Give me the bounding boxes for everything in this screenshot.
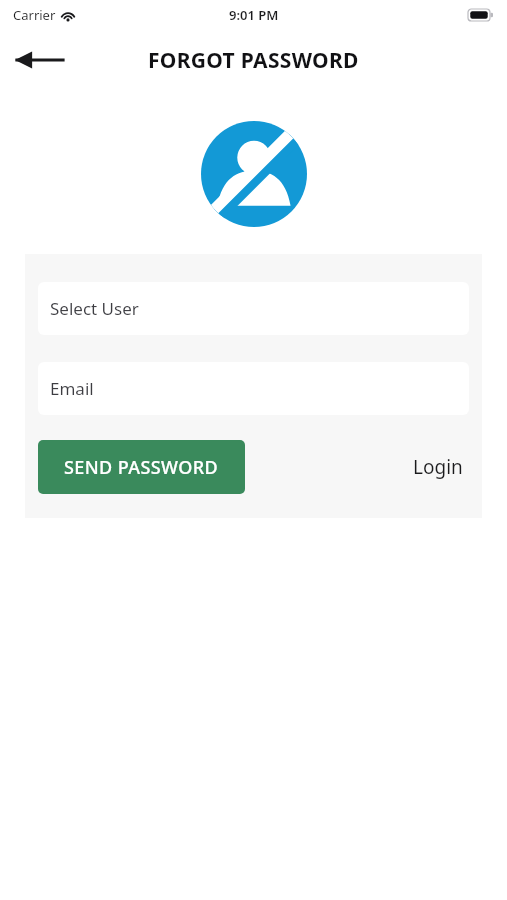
button[interactable]: Email — [38, 362, 469, 415]
button[interactable]: Back — [10, 38, 68, 82]
staticText: Select User — [50, 297, 139, 320]
staticText: SEND PASSWORD — [64, 455, 219, 480]
staticText: 9:01 PM — [229, 6, 279, 24]
staticText: Carrier — [13, 6, 56, 24]
button[interactable]: Select User — [38, 282, 469, 335]
staticText: Email — [50, 377, 94, 400]
button[interactable]: SEND PASSWORD — [38, 440, 245, 494]
staticText: Login — [413, 454, 463, 480]
staticText: FORGOT PASSWORD — [148, 46, 359, 75]
button[interactable]: Login — [407, 448, 469, 486]
